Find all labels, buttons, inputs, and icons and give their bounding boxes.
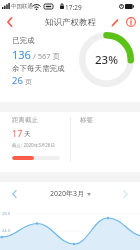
button[interactable]: Info	[123, 14, 139, 30]
staticText: 24.0	[2, 228, 10, 233]
button[interactable]: Back	[0, 12, 20, 32]
staticText: 26	[12, 74, 23, 87]
button[interactable]: Next month	[117, 186, 133, 202]
staticText: 136	[12, 47, 31, 62]
staticText: 29.0	[2, 211, 10, 216]
staticText: 2020年3月	[50, 189, 85, 199]
staticText: 中国联通	[11, 3, 33, 10]
staticText: 17:29	[65, 3, 82, 12]
staticText: 17	[12, 127, 23, 139]
button[interactable]: Previous month	[6, 186, 22, 202]
staticText: 页	[25, 77, 32, 86]
staticText: 知识产权教程	[45, 17, 96, 28]
button[interactable]: 2020年3月	[50, 189, 91, 199]
button[interactable]: Edit	[107, 14, 123, 30]
staticText: 截止: 2020年3月26日	[12, 142, 55, 148]
staticText: 距离截止	[12, 116, 38, 124]
staticText: / 567 页	[33, 51, 61, 61]
staticText: 余下每天需完成	[12, 64, 65, 73]
staticText: 23%	[95, 52, 118, 68]
staticText: 天	[24, 130, 31, 138]
staticText: 标签	[80, 116, 93, 124]
staticText: 已完成	[12, 36, 35, 45]
